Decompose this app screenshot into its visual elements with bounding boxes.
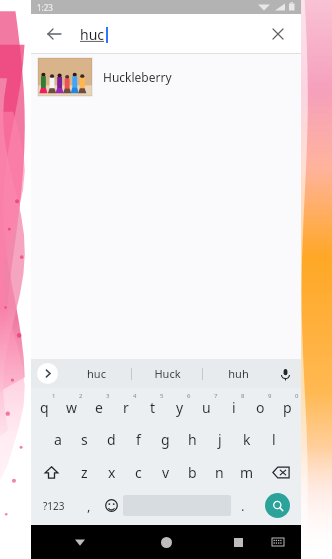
staticText: huc xyxy=(80,25,105,44)
button[interactable]: Search xyxy=(265,493,290,518)
staticText: l xyxy=(272,430,276,449)
staticText: j xyxy=(218,430,222,449)
staticText: 9 xyxy=(268,392,272,400)
staticText: 7 xyxy=(214,392,218,400)
staticText: g xyxy=(161,430,170,449)
staticText: c xyxy=(135,463,142,482)
staticText: d xyxy=(107,430,116,449)
button[interactable]: z xyxy=(71,456,98,489)
staticText: 8 xyxy=(241,392,245,400)
staticText: b xyxy=(188,463,197,482)
button[interactable]: Emoji xyxy=(100,489,123,522)
button[interactable]: Change keyboard xyxy=(267,531,289,553)
staticText: 1 xyxy=(52,392,56,400)
button[interactable]: s xyxy=(71,423,98,456)
button[interactable]: n xyxy=(206,456,233,489)
button[interactable]: huc xyxy=(61,359,131,388)
button[interactable]: i xyxy=(220,391,247,423)
staticText: 0 xyxy=(295,392,299,400)
staticText: e xyxy=(95,398,103,417)
button[interactable]: e xyxy=(85,391,112,423)
staticText: 3 xyxy=(106,392,110,400)
staticText: w xyxy=(66,398,78,417)
button[interactable]: ?123 xyxy=(31,489,77,522)
button[interactable]: j xyxy=(206,423,233,456)
staticText: r xyxy=(123,398,129,417)
staticText: y xyxy=(176,398,184,417)
button[interactable]: h xyxy=(179,423,206,456)
staticText: Huck xyxy=(154,366,181,381)
staticText: a xyxy=(54,430,62,449)
button[interactable]: Shift xyxy=(31,456,71,489)
button[interactable]: l xyxy=(260,423,287,456)
staticText: f xyxy=(136,430,141,449)
button[interactable]: a xyxy=(44,423,71,456)
staticText: q xyxy=(40,398,49,417)
staticText: z xyxy=(81,463,88,482)
staticText: o xyxy=(256,398,265,417)
button[interactable]: c xyxy=(125,456,152,489)
button[interactable]: Home xyxy=(153,529,179,555)
staticText: . xyxy=(241,497,245,515)
button[interactable]: r xyxy=(112,391,139,423)
button[interactable]: Backspace xyxy=(260,456,301,489)
staticText: 6 xyxy=(187,392,191,400)
staticText: huc xyxy=(87,366,106,381)
staticText: s xyxy=(81,430,88,449)
button[interactable]: o xyxy=(247,391,274,423)
button[interactable]: d xyxy=(98,423,125,456)
button[interactable]: Back xyxy=(67,529,93,555)
button[interactable]: Back xyxy=(39,19,69,49)
staticText: k xyxy=(243,430,251,449)
button[interactable]: y xyxy=(166,391,193,423)
button[interactable]: Huckleberry xyxy=(31,54,301,100)
button[interactable]: More suggestions xyxy=(37,363,58,384)
button[interactable]: k xyxy=(233,423,260,456)
staticText: huh xyxy=(228,366,249,381)
button[interactable]: v xyxy=(152,456,179,489)
staticText: 4 xyxy=(133,392,137,400)
button[interactable]: Clear xyxy=(263,19,293,49)
staticText: 2 xyxy=(79,392,83,400)
staticText: , xyxy=(87,497,91,515)
staticText: ?123 xyxy=(43,499,65,513)
button[interactable]: . xyxy=(231,489,254,522)
staticText: 5 xyxy=(160,392,164,400)
button[interactable]: m xyxy=(233,456,260,489)
button[interactable]: Voice input xyxy=(274,363,296,385)
button[interactable]: p xyxy=(274,391,301,423)
staticText: t xyxy=(150,398,156,417)
staticText: m xyxy=(240,463,254,482)
button[interactable]: t xyxy=(139,391,166,423)
button[interactable]: g xyxy=(152,423,179,456)
button[interactable]: , xyxy=(77,489,100,522)
button[interactable]: w xyxy=(58,391,85,423)
button[interactable]: q xyxy=(31,391,58,423)
button[interactable]: u xyxy=(193,391,220,423)
staticText: p xyxy=(283,398,292,417)
staticText: n xyxy=(215,463,224,482)
staticText: 1:23 xyxy=(37,2,53,13)
button[interactable]: x xyxy=(98,456,125,489)
button[interactable]: Huck xyxy=(132,359,202,388)
button[interactable]: b xyxy=(179,456,206,489)
staticText: u xyxy=(202,398,211,417)
button[interactable]: f xyxy=(125,423,152,456)
staticText: Huckleberry xyxy=(103,69,172,85)
button[interactable]: Recents xyxy=(225,529,251,555)
staticText: x xyxy=(108,463,116,482)
button[interactable]: huh xyxy=(203,359,273,388)
staticText: h xyxy=(188,430,197,449)
staticText: i xyxy=(232,398,236,417)
staticText: v xyxy=(162,463,170,482)
